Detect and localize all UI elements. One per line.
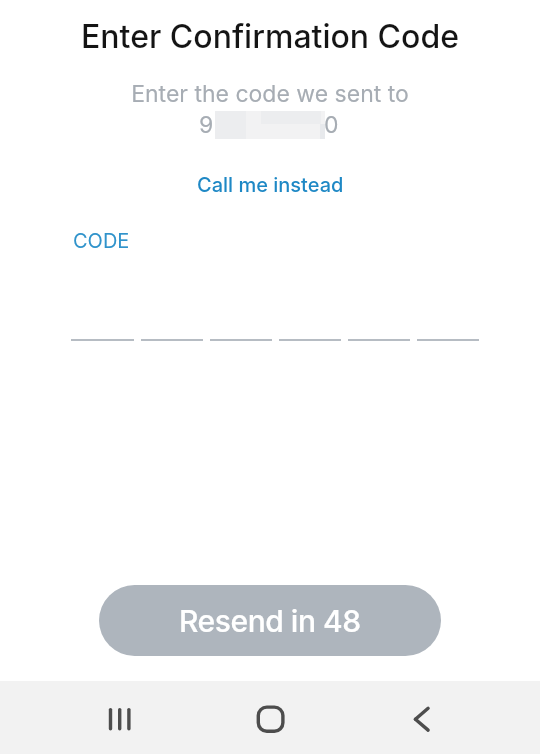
button[interactable]: Back [373,681,469,754]
button[interactable]: Resend in 48 [99,585,441,656]
staticText: 0 [324,111,339,139]
button[interactable]: Call me instead [185,166,356,204]
staticText: Call me instead [197,173,344,197]
staticText: 9 [199,111,214,139]
staticText: CODE [73,229,130,253]
staticText: Enter the code we sent to [0,80,540,108]
button[interactable]: Recent apps [72,681,168,754]
button[interactable]: Home [222,681,318,754]
staticText: Resend in 48 [179,603,361,639]
button[interactable]: Code [71,226,479,344]
staticText: Enter Confirmation Code [0,17,540,56]
